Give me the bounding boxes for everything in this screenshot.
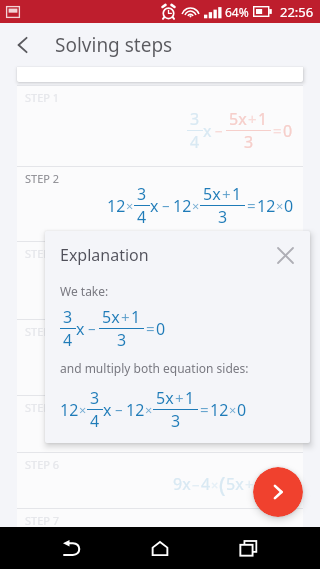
staticText: 3 — [218, 206, 228, 228]
button[interactable]: STEP 3 — [17, 241, 303, 319]
staticText: + — [248, 109, 257, 130]
staticText: 1 — [232, 183, 242, 205]
staticText: 5x — [229, 108, 247, 130]
staticText: 5x — [226, 473, 244, 495]
staticText: × — [192, 197, 200, 214]
staticText: STEP 4 — [25, 324, 60, 339]
staticText: × — [229, 401, 237, 418]
staticText: 1 — [258, 108, 268, 130]
button[interactable]: STEP 2 — [17, 166, 303, 241]
staticText: 9x — [173, 473, 191, 495]
staticText: + — [121, 307, 130, 328]
staticText: 3 — [117, 329, 127, 351]
staticText: + — [222, 184, 231, 205]
staticText: and multiply both equation sides: — [60, 360, 249, 376]
staticText: = — [273, 120, 282, 141]
staticText: × — [145, 401, 153, 418]
staticText: 12 — [210, 399, 229, 421]
staticText: 12 — [257, 195, 276, 217]
staticText: 0 — [237, 399, 247, 421]
button[interactable]: STEP 4 — [17, 319, 303, 395]
staticText: 3 — [90, 387, 100, 409]
staticText: We take: — [60, 283, 109, 299]
staticText: = — [146, 318, 155, 339]
staticText: + — [175, 388, 184, 409]
staticText: 1 — [185, 387, 195, 409]
staticText: × — [276, 197, 284, 214]
staticText: STEP 6 — [25, 457, 60, 472]
staticText: 3 — [244, 131, 254, 153]
staticText: 3 — [137, 183, 147, 205]
staticText: STEP 7 — [25, 513, 60, 527]
staticText: 12 — [126, 399, 145, 421]
staticText: × — [126, 197, 134, 214]
staticText: 5x — [102, 306, 120, 328]
staticText: 4 — [90, 410, 100, 432]
staticText: ) — [265, 469, 272, 499]
staticText: ( — [219, 469, 226, 499]
staticText: 4 — [63, 329, 73, 351]
staticText: 3 — [171, 410, 181, 432]
staticText: 4 — [190, 131, 200, 153]
staticText: – — [215, 120, 223, 141]
staticText: 4 — [201, 473, 211, 495]
staticText: x — [150, 195, 159, 217]
staticText: – — [192, 474, 200, 495]
button[interactable]: STEP 7 — [17, 508, 303, 527]
staticText: STEP 2 — [25, 171, 60, 186]
staticText: STEP 1 — [25, 90, 60, 105]
staticText: 3 — [63, 306, 73, 328]
staticText: 3 — [190, 108, 200, 130]
button[interactable]: Recent apps — [226, 527, 270, 569]
staticText: 1 — [131, 306, 141, 328]
button[interactable]: Back — [0, 23, 46, 67]
staticText: 4 — [137, 206, 147, 228]
button[interactable]: Back — [50, 527, 94, 569]
button[interactable]: Next step — [253, 467, 303, 517]
staticText: x — [76, 318, 85, 340]
button[interactable]: STEP 5 — [17, 395, 303, 452]
staticText: 5x — [156, 387, 174, 409]
staticText: 0 — [284, 195, 294, 217]
button[interactable]: Home — [138, 527, 182, 569]
staticText: Explanation — [60, 244, 149, 266]
staticText: 12 — [173, 195, 192, 217]
staticText: × — [79, 401, 87, 418]
staticText: × — [211, 476, 219, 493]
staticText: 12 — [60, 399, 79, 421]
staticText: STEP 3 — [25, 246, 60, 261]
staticText: x — [203, 120, 212, 142]
staticText: STEP 5 — [25, 400, 60, 415]
staticText: = — [200, 399, 209, 420]
staticText: 0 — [156, 318, 166, 340]
staticText: 1 — [255, 473, 265, 495]
button[interactable]: STEP 1 — [17, 85, 303, 166]
staticText: Solving steps — [55, 32, 173, 58]
staticText: 0 — [283, 120, 293, 142]
staticText: 22:56 — [280, 3, 314, 21]
staticText: + — [245, 474, 254, 495]
button[interactable]: Close — [272, 242, 298, 268]
staticText: – — [88, 318, 96, 339]
staticText: = — [247, 195, 256, 216]
button[interactable]: STEP 6 — [17, 452, 303, 508]
staticText: 5x — [203, 183, 221, 205]
staticText: – — [115, 399, 123, 420]
staticText: 64% — [225, 4, 249, 20]
staticText: = — [273, 474, 282, 495]
staticText: 12 — [107, 195, 126, 217]
staticText: – — [162, 195, 170, 216]
staticText: x — [103, 399, 112, 421]
